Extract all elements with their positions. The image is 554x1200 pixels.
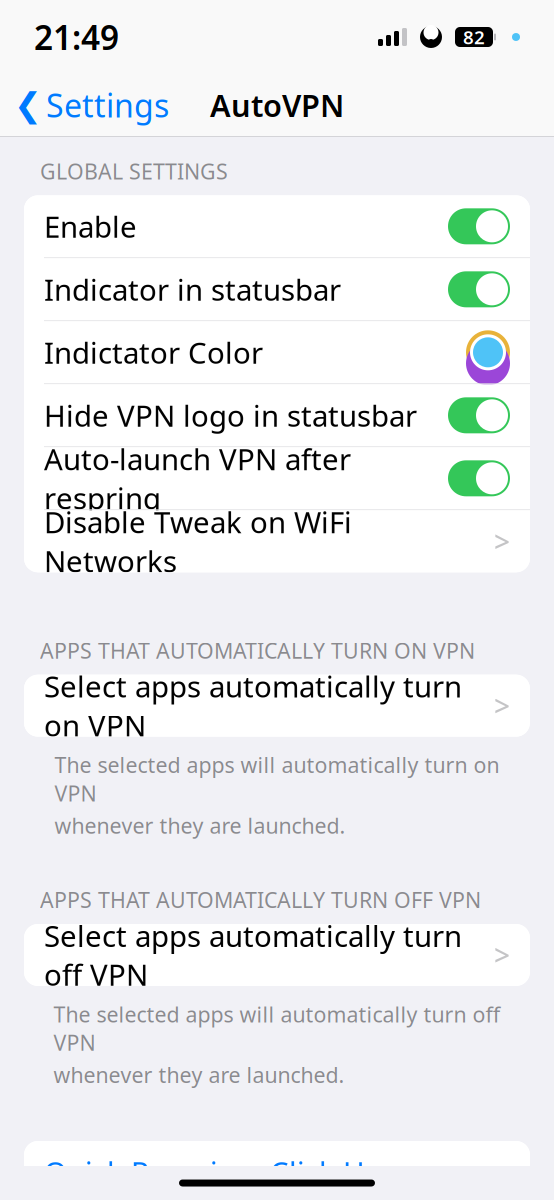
- button[interactable]: ❮: [0, 80, 183, 130]
- staticText: >: [494, 687, 510, 724]
- staticText: >: [494, 523, 510, 560]
- staticText: GLOBAL SETTINGS: [40, 157, 228, 185]
- staticText: 21:49: [34, 15, 119, 59]
- staticText: Indicator in statusbar: [44, 270, 341, 309]
- staticText: The selected apps will automatically tur…: [53, 1000, 500, 1057]
- staticText: APPS THAT AUTOMATICALLY TURN OFF VPN: [40, 886, 481, 914]
- button[interactable]: Indicator in statusbar: [24, 258, 530, 320]
- staticText: Indictator Color: [44, 333, 263, 372]
- button[interactable]: Hide VPN logo in statusbar: [24, 384, 530, 446]
- button[interactable]: Select apps automatically turn on VPN: [24, 675, 530, 737]
- staticText: Hide VPN logo in statusbar: [44, 396, 417, 435]
- button[interactable]: Enable: [24, 195, 530, 257]
- staticText: ❮: [14, 86, 42, 124]
- staticText: Enable: [44, 207, 137, 246]
- staticText: Quick Respring, Click Here: [44, 1152, 411, 1191]
- staticText: Auto-launch VPN after respring: [44, 439, 351, 517]
- staticText: Disable Tweak on WiFi Networks: [44, 502, 352, 580]
- staticText: AutoVPN: [210, 85, 344, 125]
- button[interactable]: Auto-launch VPN after respring: [24, 447, 530, 509]
- staticText: >: [494, 936, 510, 974]
- staticText: The selected apps will automatically tur…: [54, 751, 499, 807]
- staticText: Settings: [46, 84, 169, 126]
- button[interactable]: Indictator Color: [24, 321, 530, 383]
- staticText: 82: [463, 25, 485, 49]
- staticText: APPS THAT AUTOMATICALLY TURN ON VPN: [40, 636, 475, 665]
- button[interactable]: Disable Tweak on WiFi Networks: [24, 510, 530, 572]
- staticText: whenever they are launched.: [53, 1061, 344, 1089]
- button[interactable]: Quick Respring, Click Here: [24, 1141, 530, 1200]
- button[interactable]: Select apps automatically turn off VPN: [24, 924, 530, 986]
- staticText: Select apps automatically turn off VPN: [44, 916, 462, 994]
- staticText: Select apps automatically turn on VPN: [44, 667, 462, 745]
- staticText: whenever they are launched.: [54, 811, 345, 840]
